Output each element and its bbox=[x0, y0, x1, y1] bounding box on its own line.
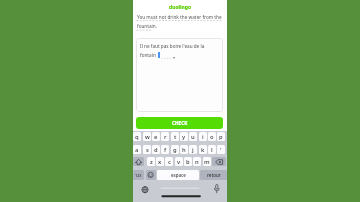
staticText: c bbox=[168, 158, 171, 166]
staticText: r bbox=[164, 133, 167, 141]
staticText: a bbox=[135, 146, 139, 154]
staticText: w bbox=[145, 133, 150, 141]
staticText: q bbox=[135, 133, 139, 141]
button[interactable]: e bbox=[152, 132, 160, 141]
staticText: CHECK bbox=[172, 120, 188, 126]
staticText: b bbox=[186, 158, 190, 166]
button[interactable]: 123 bbox=[133, 170, 144, 180]
staticText: p bbox=[219, 133, 223, 141]
staticText: 123 bbox=[135, 173, 142, 178]
button[interactable]: g bbox=[171, 145, 179, 154]
staticText: z bbox=[150, 158, 153, 166]
staticText: Il ne faut pas boire l'eau de la bbox=[140, 43, 205, 49]
staticText: fountain. bbox=[137, 23, 157, 29]
staticText: y bbox=[182, 133, 186, 141]
button[interactable]: n bbox=[193, 157, 201, 166]
staticText: h bbox=[182, 146, 186, 154]
button[interactable]: z bbox=[147, 157, 155, 166]
button[interactable] bbox=[146, 170, 156, 180]
staticText: j bbox=[192, 146, 194, 154]
staticText: espace bbox=[171, 172, 186, 178]
staticText: retour bbox=[207, 172, 221, 178]
button[interactable] bbox=[212, 157, 226, 166]
button[interactable] bbox=[133, 157, 144, 166]
button[interactable]: CHECK bbox=[136, 117, 223, 129]
staticText: k bbox=[201, 146, 205, 154]
button[interactable]: p bbox=[217, 132, 225, 141]
button[interactable]: x bbox=[156, 157, 164, 166]
button[interactable]: a bbox=[133, 145, 141, 154]
button[interactable]: h bbox=[180, 145, 188, 154]
button[interactable]: retour bbox=[200, 170, 227, 180]
button[interactable]: j bbox=[189, 145, 197, 154]
staticText: l bbox=[211, 146, 213, 154]
staticText: u bbox=[191, 133, 195, 141]
button[interactable]: r bbox=[161, 132, 169, 141]
staticText: n bbox=[195, 158, 199, 166]
button[interactable]: f bbox=[161, 145, 169, 154]
button[interactable]: v bbox=[175, 157, 183, 166]
staticText: ' bbox=[220, 146, 222, 154]
button[interactable]: b bbox=[184, 157, 192, 166]
button[interactable]: y bbox=[180, 132, 188, 141]
button[interactable]: espace bbox=[157, 170, 199, 180]
staticText: d bbox=[154, 146, 158, 154]
staticText: You must not drink the water from the bbox=[137, 14, 222, 20]
button[interactable]: ' bbox=[217, 145, 225, 154]
staticText: x bbox=[158, 158, 162, 166]
button[interactable]: i bbox=[199, 132, 207, 141]
staticText: s bbox=[146, 146, 149, 154]
button[interactable]: q bbox=[133, 132, 141, 141]
button[interactable]: m bbox=[203, 157, 211, 166]
staticText: t bbox=[174, 133, 177, 141]
button[interactable]: d bbox=[152, 145, 160, 154]
staticText: m bbox=[204, 158, 210, 166]
staticText: o bbox=[210, 133, 214, 141]
button[interactable]: u bbox=[189, 132, 197, 141]
staticText: fontain bbox=[140, 52, 156, 58]
staticText: v bbox=[177, 158, 181, 166]
button[interactable]: s bbox=[143, 145, 151, 154]
staticText: e bbox=[154, 133, 158, 141]
button[interactable]: w bbox=[143, 132, 151, 141]
button[interactable]: t bbox=[171, 132, 179, 141]
button[interactable]: k bbox=[199, 145, 207, 154]
button[interactable]: o bbox=[208, 132, 216, 141]
staticText: i bbox=[202, 133, 204, 141]
button[interactable]: Il ne faut pas boire l'eau de la bbox=[136, 38, 223, 112]
staticText: duolingo bbox=[169, 4, 192, 11]
staticText: g bbox=[173, 146, 177, 154]
staticText: f bbox=[164, 146, 167, 154]
button[interactable]: c bbox=[165, 157, 173, 166]
button[interactable]: l bbox=[208, 145, 216, 154]
